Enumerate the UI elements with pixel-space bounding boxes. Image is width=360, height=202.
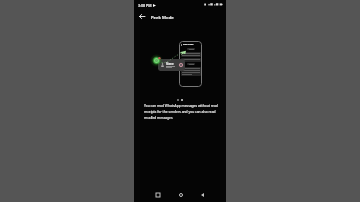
button[interactable]: Home [176,190,185,199]
staticText: Peek Mode [183,43,194,46]
button[interactable]: Steve [158,59,185,71]
button[interactable]: Back [198,190,207,199]
staticText: Steve [166,62,174,66]
button[interactable]: Recent apps [153,190,162,199]
button[interactable]: Back [137,12,146,21]
staticText: 3:08 PM [138,3,152,8]
staticText: Peek Mode [151,14,174,20]
staticText: You can read WhatsApp messages without r… [144,104,218,120]
